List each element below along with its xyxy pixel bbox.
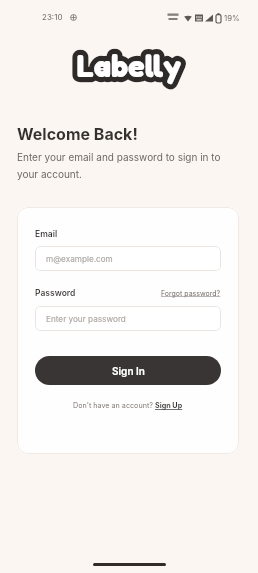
staticText: Welcome Back! (17, 124, 138, 143)
staticText: Don't have an account? (73, 401, 155, 410)
button[interactable]: Enter your password (35, 306, 221, 331)
staticText: Labelly (76, 47, 182, 85)
staticText: Email (35, 229, 58, 239)
button[interactable]: Sign Up (155, 401, 183, 410)
staticText: Password (35, 288, 76, 298)
staticText: 23:10 (42, 12, 63, 22)
staticText: Labelly (76, 47, 182, 85)
button[interactable]: m@example.com (35, 246, 221, 271)
staticText: 19% (224, 13, 240, 22)
staticText: Sign In (112, 365, 145, 377)
button[interactable]: Forgot password? (161, 289, 221, 297)
button[interactable]: Sign In (35, 356, 221, 385)
staticText: Enter your password (46, 314, 126, 324)
staticText: Enter your email and password to sign in… (17, 151, 241, 180)
staticText: m@example.com (46, 254, 113, 264)
